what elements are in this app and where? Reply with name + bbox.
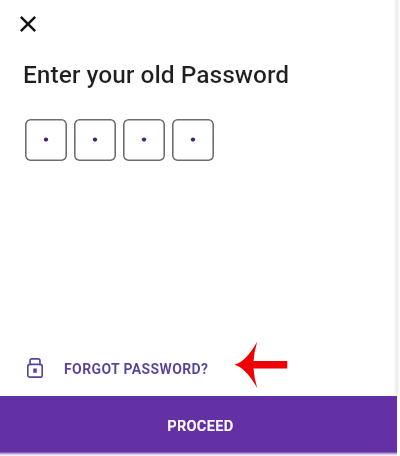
staticText: FORGOT PASSWORD? (64, 361, 209, 377)
button[interactable]: Password digit 3 (123, 119, 165, 161)
button[interactable]: Password digit 4 (172, 119, 214, 161)
button[interactable]: Password digit 2 (74, 119, 116, 161)
button[interactable]: FORGOT PASSWORD? (18, 350, 218, 386)
staticText: Enter your old Password (23, 60, 290, 89)
button[interactable]: PROCEED (0, 396, 397, 456)
button[interactable]: Password digit 1 (25, 119, 67, 161)
button[interactable]: Close (13, 9, 42, 38)
staticText: PROCEED (167, 418, 234, 435)
